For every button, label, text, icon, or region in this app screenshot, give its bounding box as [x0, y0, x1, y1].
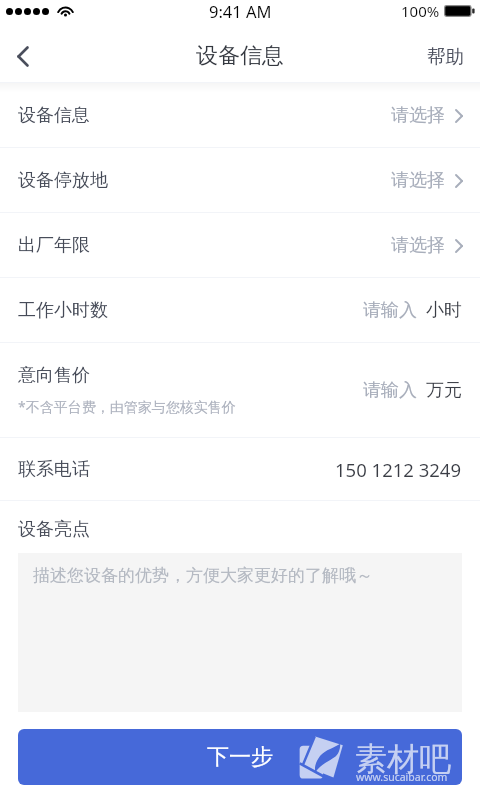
staticText: 出厂年限: [18, 234, 90, 257]
staticText: 下一步: [207, 743, 273, 771]
staticText: 请选择: [391, 104, 445, 127]
button[interactable]: Back: [0, 30, 48, 82]
staticText: 150 1212 3249: [335, 457, 462, 482]
staticText: 联系电话: [18, 458, 90, 481]
staticText: 请输入: [363, 299, 417, 322]
button[interactable]: 描述您设备的优势，方便大家更好的了解哦～: [18, 553, 462, 712]
button[interactable]: 工作小时数: [0, 278, 480, 342]
staticText: 小时: [426, 299, 462, 322]
staticText: 意向售价: [18, 364, 90, 387]
button[interactable]: 设备停放地: [0, 148, 480, 212]
staticText: *不含平台费，由管家与您核实售价: [18, 397, 236, 416]
staticText: 万元: [426, 379, 462, 402]
staticText: 9:41 AM: [209, 0, 272, 22]
staticText: 请输入: [363, 379, 417, 402]
staticText: www.sucaibar.com: [356, 770, 448, 784]
staticText: 工作小时数: [18, 299, 108, 322]
button[interactable]: 设备信息: [0, 83, 480, 147]
staticText: 请选择: [391, 169, 445, 192]
staticText: 帮助: [427, 45, 464, 68]
staticText: 素材吧: [355, 739, 451, 779]
button[interactable]: 联系电话: [0, 438, 480, 500]
staticText: 100%: [401, 1, 440, 21]
staticText: 设备信息: [196, 42, 284, 70]
button[interactable]: 意向售价: [0, 343, 480, 437]
staticText: 设备亮点: [18, 518, 90, 541]
button[interactable]: 出厂年限: [0, 213, 480, 277]
button[interactable]: 下一步: [18, 729, 462, 785]
button[interactable]: 帮助: [411, 30, 480, 82]
staticText: 描述您设备的优势，方便大家更好的了解哦～: [33, 565, 373, 586]
staticText: 设备信息: [18, 104, 90, 127]
staticText: 设备停放地: [18, 169, 108, 192]
staticText: 请选择: [391, 234, 445, 257]
